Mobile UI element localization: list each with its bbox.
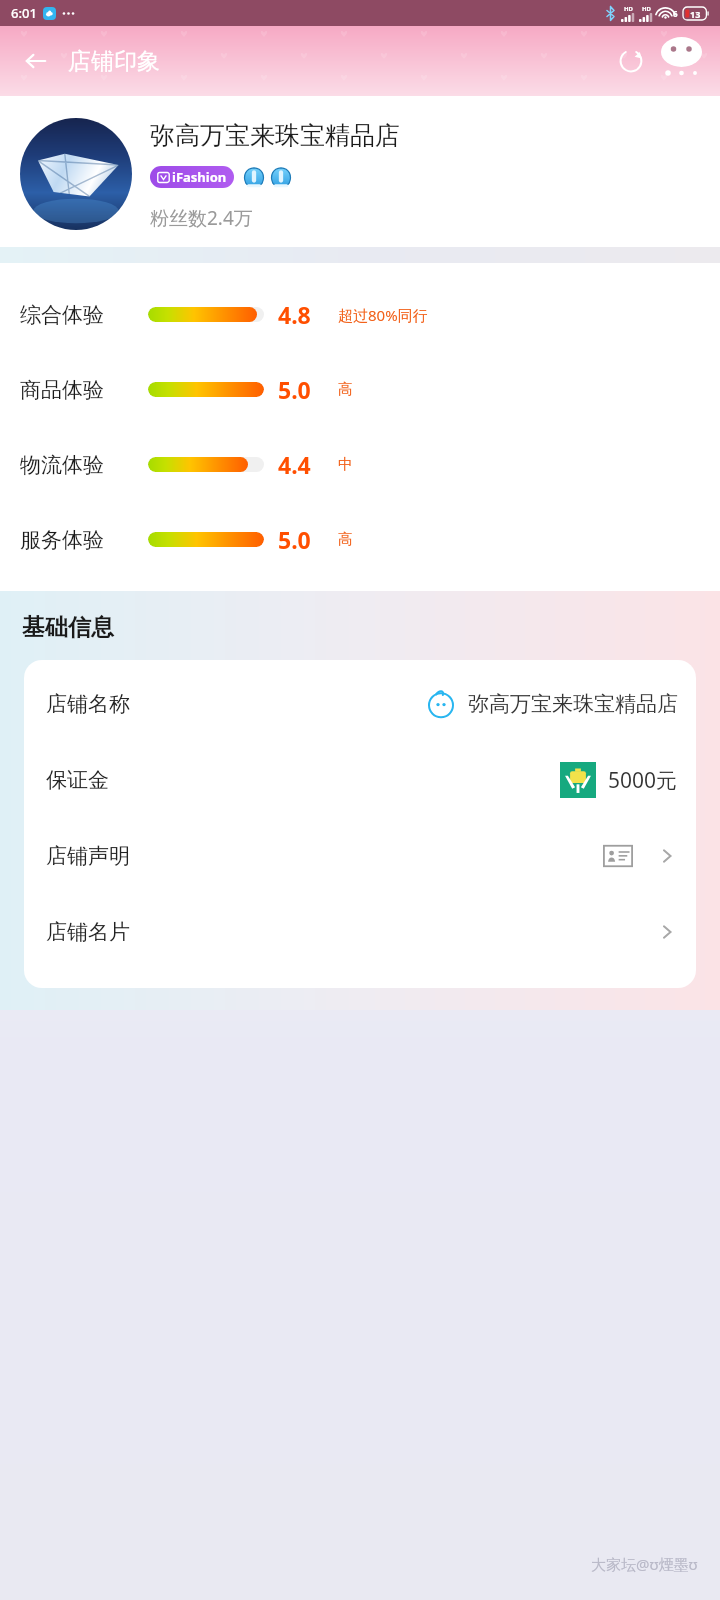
button[interactable]: iFashion [150, 166, 234, 188]
staticText: HD [624, 5, 633, 13]
button[interactable]: 弥高万宝来珠宝精品店 [0, 96, 720, 231]
staticText: 大家坛@ʊ煙墨ʊ [591, 1554, 698, 1574]
staticText: 店铺声明 [46, 843, 130, 869]
staticText: 保证金 [46, 767, 109, 793]
button[interactable]: 综合体验 [0, 277, 720, 352]
staticText: 6:01 [11, 4, 37, 22]
staticText: 弥高万宝来珠宝精品店 [468, 691, 678, 717]
staticText: 店铺名称 [46, 691, 130, 717]
button[interactable]: 服务体验 [0, 502, 720, 577]
button[interactable]: Refresh [608, 38, 654, 84]
staticText: 粉丝数2.4万 [150, 205, 253, 231]
staticText: 5.0 [278, 374, 324, 405]
staticText: 店铺印象 [68, 47, 160, 76]
button[interactable]: 店铺声明 [24, 818, 696, 894]
staticText: 服务体验 [20, 527, 138, 553]
button[interactable]: More [656, 36, 706, 86]
staticText: 5000元 [608, 766, 678, 795]
staticText: 高 [338, 380, 353, 399]
staticText: 13 [690, 8, 701, 20]
staticText: 超过80%同行 [338, 305, 428, 325]
button[interactable]: 店铺名片 [24, 894, 696, 970]
staticText: 综合体验 [20, 302, 138, 328]
staticText: 基础信息 [22, 613, 114, 642]
button[interactable]: 店铺名称 [24, 666, 696, 742]
button[interactable]: 物流体验 [0, 427, 720, 502]
staticText: 店铺名片 [46, 919, 130, 945]
staticText: 物流体验 [20, 452, 138, 478]
staticText: 4.4 [278, 449, 324, 480]
button[interactable]: 保证金 [24, 742, 696, 818]
staticText: 5.0 [278, 524, 324, 555]
staticText: HD [642, 5, 651, 13]
staticText: iFashion [172, 168, 227, 186]
staticText: 6 [673, 8, 678, 19]
button[interactable]: Back [14, 39, 58, 83]
staticText: 弥高万宝来珠宝精品店 [150, 120, 400, 151]
staticText: 4.8 [278, 299, 324, 330]
staticText: 中 [338, 455, 353, 474]
staticText: 高 [338, 530, 353, 549]
staticText: 商品体验 [20, 377, 138, 403]
button[interactable]: 商品体验 [0, 352, 720, 427]
